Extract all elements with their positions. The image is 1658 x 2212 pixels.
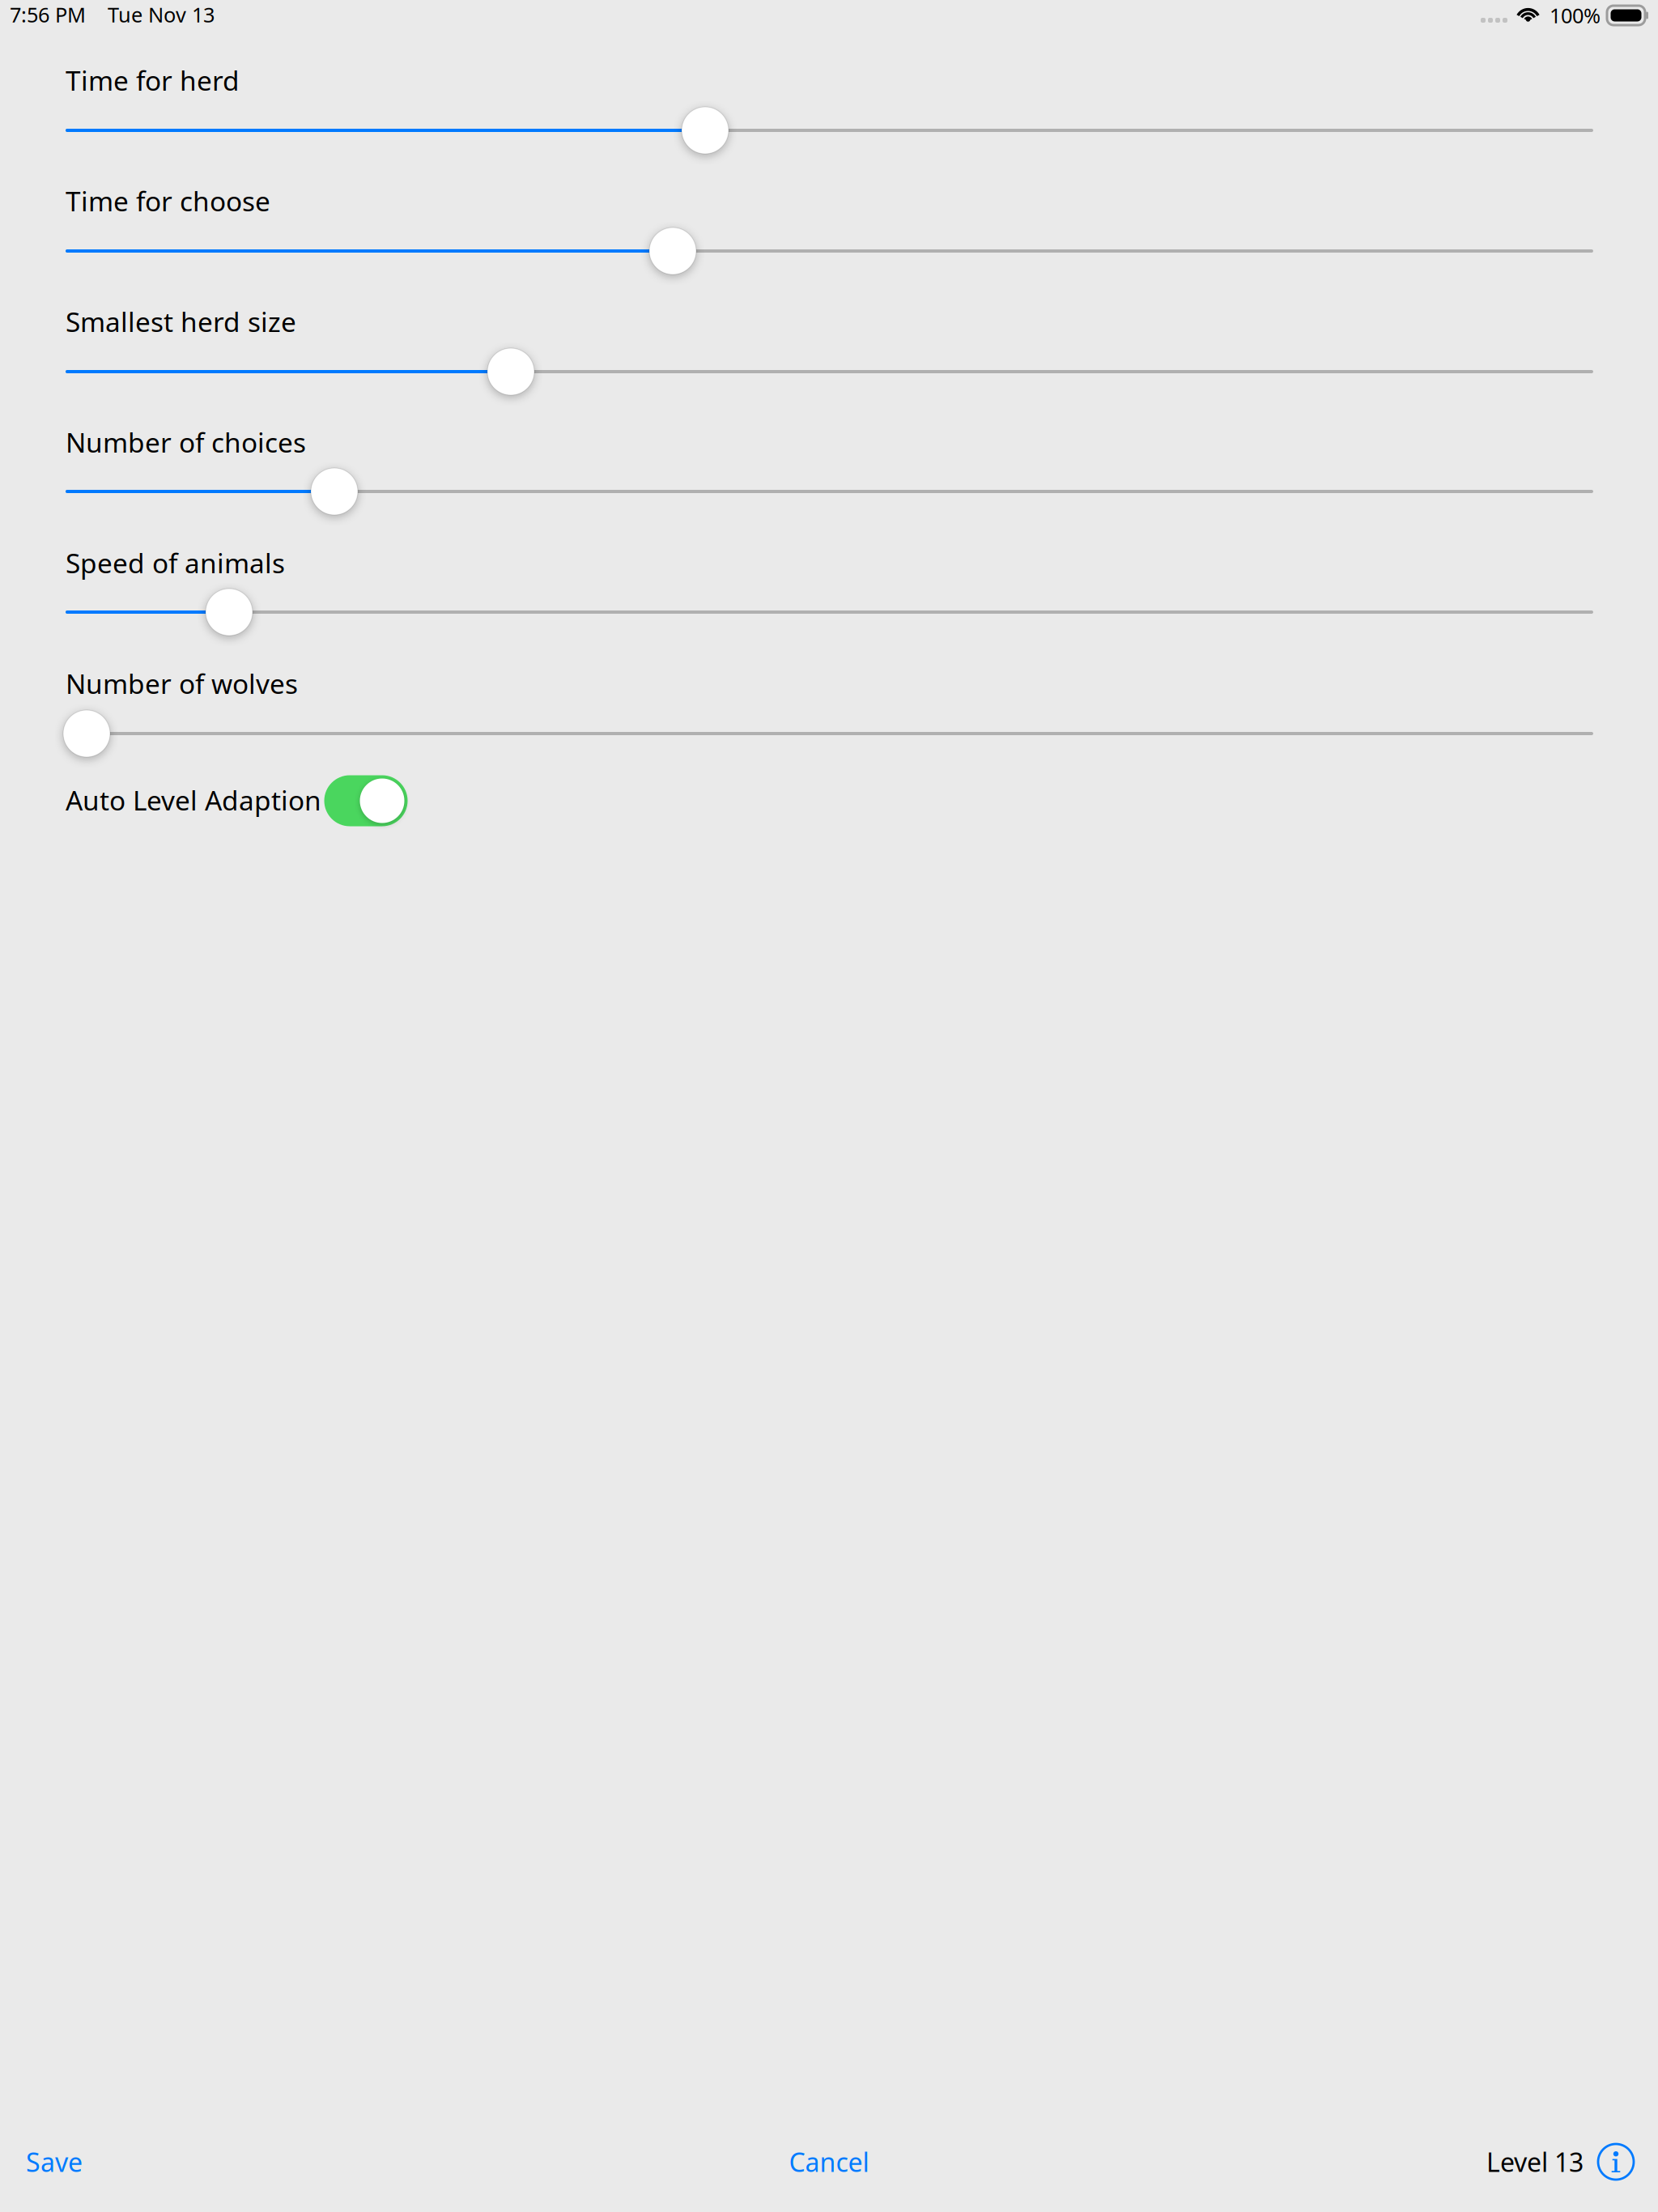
staticText: Cancel bbox=[789, 2145, 869, 2179]
button[interactable]: Save bbox=[26, 2145, 83, 2179]
staticText: 100% bbox=[1550, 2, 1601, 29]
staticText: Number of wolves bbox=[66, 665, 298, 701]
staticText: Speed of animals bbox=[66, 545, 285, 581]
staticText: Number of choices bbox=[66, 424, 306, 460]
staticText: Level 13 bbox=[1486, 2145, 1584, 2179]
staticText: Time for choose bbox=[66, 183, 270, 219]
staticText: Tue Nov 13 bbox=[108, 1, 215, 28]
button[interactable]: Number of choices bbox=[311, 468, 358, 515]
staticText: 7:56 PM bbox=[10, 1, 86, 28]
button[interactable]: Number of wolves bbox=[63, 710, 110, 757]
staticText: Time for herd bbox=[66, 62, 240, 98]
staticText: Smallest herd size bbox=[66, 304, 296, 339]
button[interactable]: Time for herd bbox=[682, 107, 729, 154]
staticText: Save bbox=[26, 2145, 83, 2179]
button[interactable]: Time for choose bbox=[649, 228, 696, 274]
button[interactable]: Level 13 info bbox=[1486, 2144, 1634, 2180]
button[interactable]: Speed of animals bbox=[206, 589, 253, 636]
staticText: Auto Level Adaption bbox=[66, 782, 321, 818]
button[interactable]: Auto Level Adaption bbox=[324, 775, 408, 826]
button[interactable]: Smallest herd size bbox=[487, 348, 534, 395]
button[interactable]: Cancel bbox=[789, 2145, 869, 2179]
